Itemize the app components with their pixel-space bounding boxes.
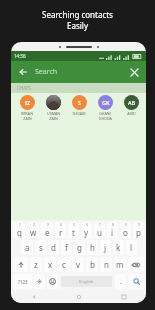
staticText: 3: [47, 223, 49, 227]
staticText: g: [77, 242, 82, 253]
button[interactable]: Search: [128, 274, 144, 289]
staticText: q: [17, 227, 22, 238]
button[interactable]: Back: [16, 65, 30, 79]
staticText: 5: [73, 223, 75, 227]
button[interactable]: Search: [35, 67, 127, 77]
button[interactable]: Clear search: [127, 65, 141, 79]
staticText: KHODA: [99, 116, 112, 121]
button[interactable]: j: [100, 240, 111, 255]
staticText: 4: [60, 223, 62, 227]
button[interactable]: z: [30, 257, 42, 272]
staticText: w: [30, 227, 37, 238]
staticText: 8: [112, 223, 114, 227]
staticText: p: [136, 227, 141, 238]
staticText: IMRAN: [21, 111, 33, 116]
button[interactable]: 1: [13, 222, 25, 238]
button[interactable]: l: [126, 240, 137, 255]
button[interactable]: 5: [68, 222, 79, 238]
button[interactable]: h: [87, 240, 98, 255]
staticText: ZAIN: [49, 116, 58, 121]
button[interactable]: ?123: [13, 274, 32, 289]
staticText: c: [62, 259, 66, 270]
staticText: Easily: [67, 20, 88, 31]
staticText: 6: [86, 223, 88, 227]
button[interactable]: c: [58, 257, 70, 272]
button[interactable]: Backspace: [128, 257, 144, 272]
staticText: o: [123, 227, 128, 238]
staticText: GK: [102, 99, 110, 106]
button[interactable]: b: [86, 257, 98, 272]
button[interactable]: 6: [81, 222, 92, 238]
button[interactable]: d: [48, 240, 59, 255]
button[interactable]: a: [21, 240, 33, 255]
staticText: t: [72, 227, 75, 238]
staticText: GHANI: [99, 111, 111, 116]
button[interactable]: USMAN: [40, 95, 66, 121]
staticText: 0: [138, 223, 140, 227]
staticText: Search: [35, 67, 58, 77]
button[interactable]: IZ: [14, 95, 40, 121]
staticText: Searching contacts: [42, 9, 113, 20]
staticText: l: [130, 242, 133, 253]
staticText: x: [48, 259, 53, 270]
button[interactable]: GK: [92, 95, 118, 121]
button[interactable]: 8: [107, 222, 118, 238]
staticText: e: [45, 227, 50, 238]
button[interactable]: 0: [133, 222, 144, 238]
button[interactable]: 9: [120, 222, 131, 238]
staticText: i: [111, 227, 114, 238]
staticText: b: [90, 259, 95, 270]
staticText: SHOAIB: [72, 111, 86, 116]
button[interactable]: Recent apps: [101, 291, 146, 303]
staticText: 14:36: [14, 53, 26, 59]
button[interactable]: 2: [27, 222, 39, 238]
staticText: English: [79, 279, 94, 285]
staticText: 7: [99, 223, 101, 227]
button[interactable]: s: [35, 240, 46, 255]
staticText: ABID: [127, 111, 136, 116]
staticText: y: [84, 227, 89, 238]
staticText: ?123: [18, 279, 28, 285]
staticText: n: [104, 259, 109, 270]
staticText: .: [120, 277, 122, 287]
staticText: 1: [19, 223, 21, 227]
button[interactable]: x: [44, 257, 56, 272]
staticText: f: [65, 242, 68, 253]
staticText: s: [39, 242, 43, 253]
staticText: AB: [128, 99, 136, 106]
staticText: j: [104, 242, 107, 253]
button[interactable]: S: [66, 95, 92, 116]
staticText: 2: [33, 223, 35, 227]
button[interactable]: Emoji: [47, 274, 58, 289]
button[interactable]: v: [72, 257, 84, 272]
staticText: USMAN: [47, 111, 60, 116]
button[interactable]: 3: [41, 222, 53, 238]
button[interactable]: 7: [94, 222, 105, 238]
staticText: CHATS: [17, 85, 31, 91]
button[interactable]: f: [61, 240, 72, 255]
staticText: 9: [125, 223, 127, 227]
staticText: S: [78, 99, 82, 106]
button[interactable]: 4: [55, 222, 66, 238]
button[interactable]: Home: [56, 291, 101, 303]
staticText: v: [76, 259, 81, 270]
staticText: k: [116, 242, 121, 253]
button[interactable]: m: [114, 257, 126, 272]
button[interactable]: Back: [11, 291, 56, 303]
staticText: m: [116, 259, 124, 270]
staticText: z: [34, 259, 38, 270]
staticText: h: [90, 242, 95, 253]
button[interactable]: n: [100, 257, 112, 272]
staticText: u: [97, 227, 102, 238]
button[interactable]: g: [74, 240, 85, 255]
button[interactable]: English: [61, 276, 112, 287]
button[interactable]: k: [113, 240, 124, 255]
button[interactable]: Shift: [13, 257, 28, 272]
staticText: ZAIN: [23, 116, 32, 121]
button[interactable]: .: [115, 274, 126, 289]
staticText: IZ: [25, 99, 31, 106]
button[interactable]: Settings: [34, 274, 45, 289]
staticText: d: [51, 242, 56, 253]
button[interactable]: AB: [118, 95, 144, 116]
staticText: r: [59, 227, 63, 238]
